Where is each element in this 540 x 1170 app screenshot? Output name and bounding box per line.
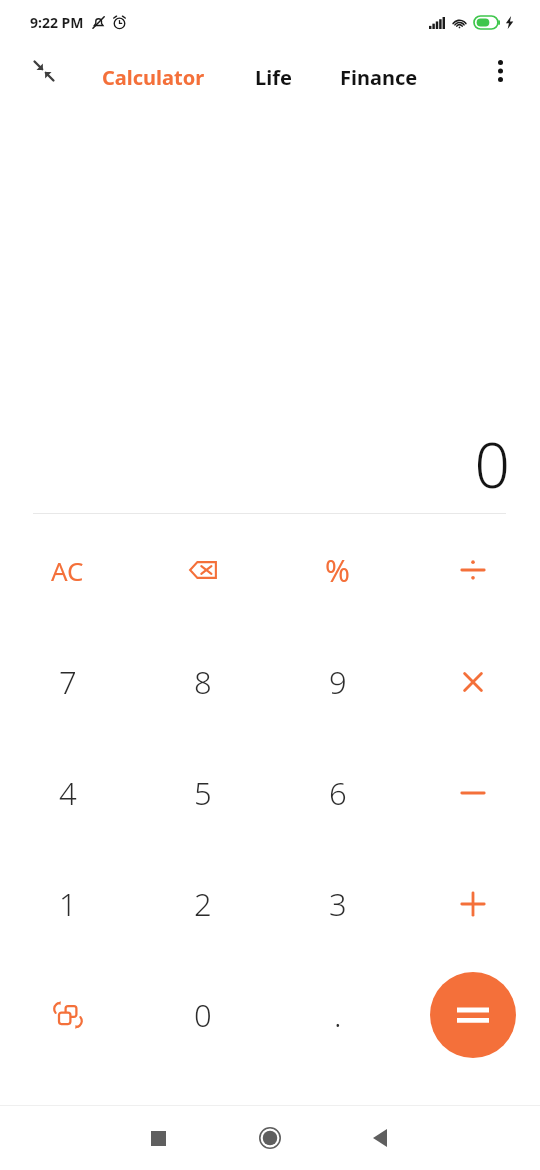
button[interactable]: 5 (135, 737, 270, 848)
button[interactable]: Plus (405, 848, 540, 959)
button[interactable]: % (270, 514, 405, 626)
button[interactable]: More options (478, 49, 522, 93)
button[interactable]: 1 (0, 848, 135, 959)
staticText: 3 (329, 883, 347, 925)
staticText: % (325, 550, 350, 591)
staticText: 0 (474, 422, 510, 506)
staticText: 1 (59, 883, 77, 925)
staticText: 9 (329, 661, 347, 703)
button[interactable]: Recents (130, 1110, 186, 1166)
staticText: AC (51, 553, 84, 588)
staticText: Life (255, 64, 292, 91)
button[interactable]: 0 (135, 959, 270, 1070)
button[interactable]: Calculator (100, 60, 207, 95)
staticText: 8 (194, 661, 212, 703)
button[interactable]: 8 (135, 626, 270, 737)
button[interactable]: Convert (0, 959, 135, 1070)
button[interactable]: Multiply (405, 626, 540, 737)
button[interactable]: Divide (405, 514, 540, 626)
button[interactable]: Back (352, 1110, 408, 1166)
button[interactable]: Backspace (135, 514, 270, 626)
button[interactable]: . (270, 959, 405, 1070)
button[interactable]: AC (0, 514, 135, 626)
button[interactable]: 3 (270, 848, 405, 959)
staticText: Calculator (102, 64, 205, 91)
staticText: 0 (194, 994, 212, 1036)
staticText: 2 (194, 883, 212, 925)
staticText: 6 (329, 772, 347, 814)
button[interactable]: Life (253, 60, 294, 95)
button[interactable]: Home (242, 1110, 298, 1166)
staticText: 9:22 PM (30, 13, 84, 32)
staticText: . (334, 994, 342, 1036)
button[interactable]: 9 (270, 626, 405, 737)
staticText: 5 (194, 772, 212, 814)
button[interactable]: Collapse (22, 49, 66, 93)
button[interactable]: 2 (135, 848, 270, 959)
button[interactable]: Equals (430, 972, 516, 1058)
button[interactable]: Finance (338, 60, 420, 95)
staticText: Finance (340, 64, 418, 91)
button[interactable]: 6 (270, 737, 405, 848)
button[interactable]: 7 (0, 626, 135, 737)
staticText: 7 (59, 661, 77, 703)
button[interactable]: Minus (405, 737, 540, 848)
button[interactable]: 4 (0, 737, 135, 848)
staticText: 4 (59, 772, 77, 814)
